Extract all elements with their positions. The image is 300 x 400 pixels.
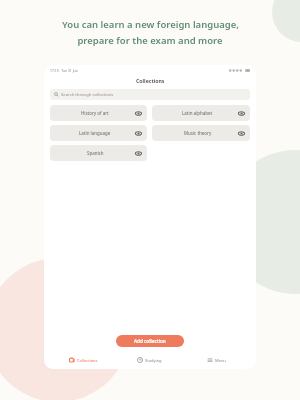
- button[interactable]: Toggle visibility of Spanish: [135, 150, 142, 157]
- button[interactable]: Music theory: [152, 125, 250, 141]
- button[interactable]: Spanish: [50, 145, 147, 161]
- staticText: Menu: [215, 358, 226, 363]
- staticText: Search through collections: [61, 92, 114, 98]
- button[interactable]: Toggle visibility of Latin language: [135, 130, 142, 137]
- staticText: Collections: [136, 77, 165, 84]
- button[interactable]: Latin language: [50, 125, 147, 141]
- staticText: Latin alphabet: [182, 110, 213, 116]
- button[interactable]: Toggle visibility of Music theory: [238, 130, 245, 137]
- staticText: You can learn a new foreign language,: [62, 18, 239, 31]
- button[interactable]: Toggle visibility of Latin alphabet: [238, 110, 245, 117]
- button[interactable]: Toggle visibility of History of art: [135, 110, 142, 117]
- button[interactable]: Collections: [50, 353, 116, 367]
- staticText: Add collection: [134, 338, 166, 344]
- button[interactable]: Add collection: [116, 335, 184, 347]
- staticText: 17:10 Tue 21 Jun: [50, 68, 78, 73]
- staticText: prepare for the exam and more: [77, 34, 223, 47]
- staticText: History of art: [81, 110, 109, 116]
- staticText: Latin language: [79, 130, 111, 136]
- button[interactable]: Latin alphabet: [152, 105, 250, 121]
- staticText: Studying: [145, 358, 162, 363]
- staticText: Music theory: [184, 130, 212, 136]
- staticText: Collections: [77, 358, 98, 363]
- button[interactable]: Studying: [116, 353, 183, 367]
- button[interactable]: Menu: [183, 353, 250, 367]
- button[interactable]: Search through collections: [50, 89, 250, 100]
- button[interactable]: History of art: [50, 105, 147, 121]
- staticText: Spanish: [87, 150, 104, 156]
